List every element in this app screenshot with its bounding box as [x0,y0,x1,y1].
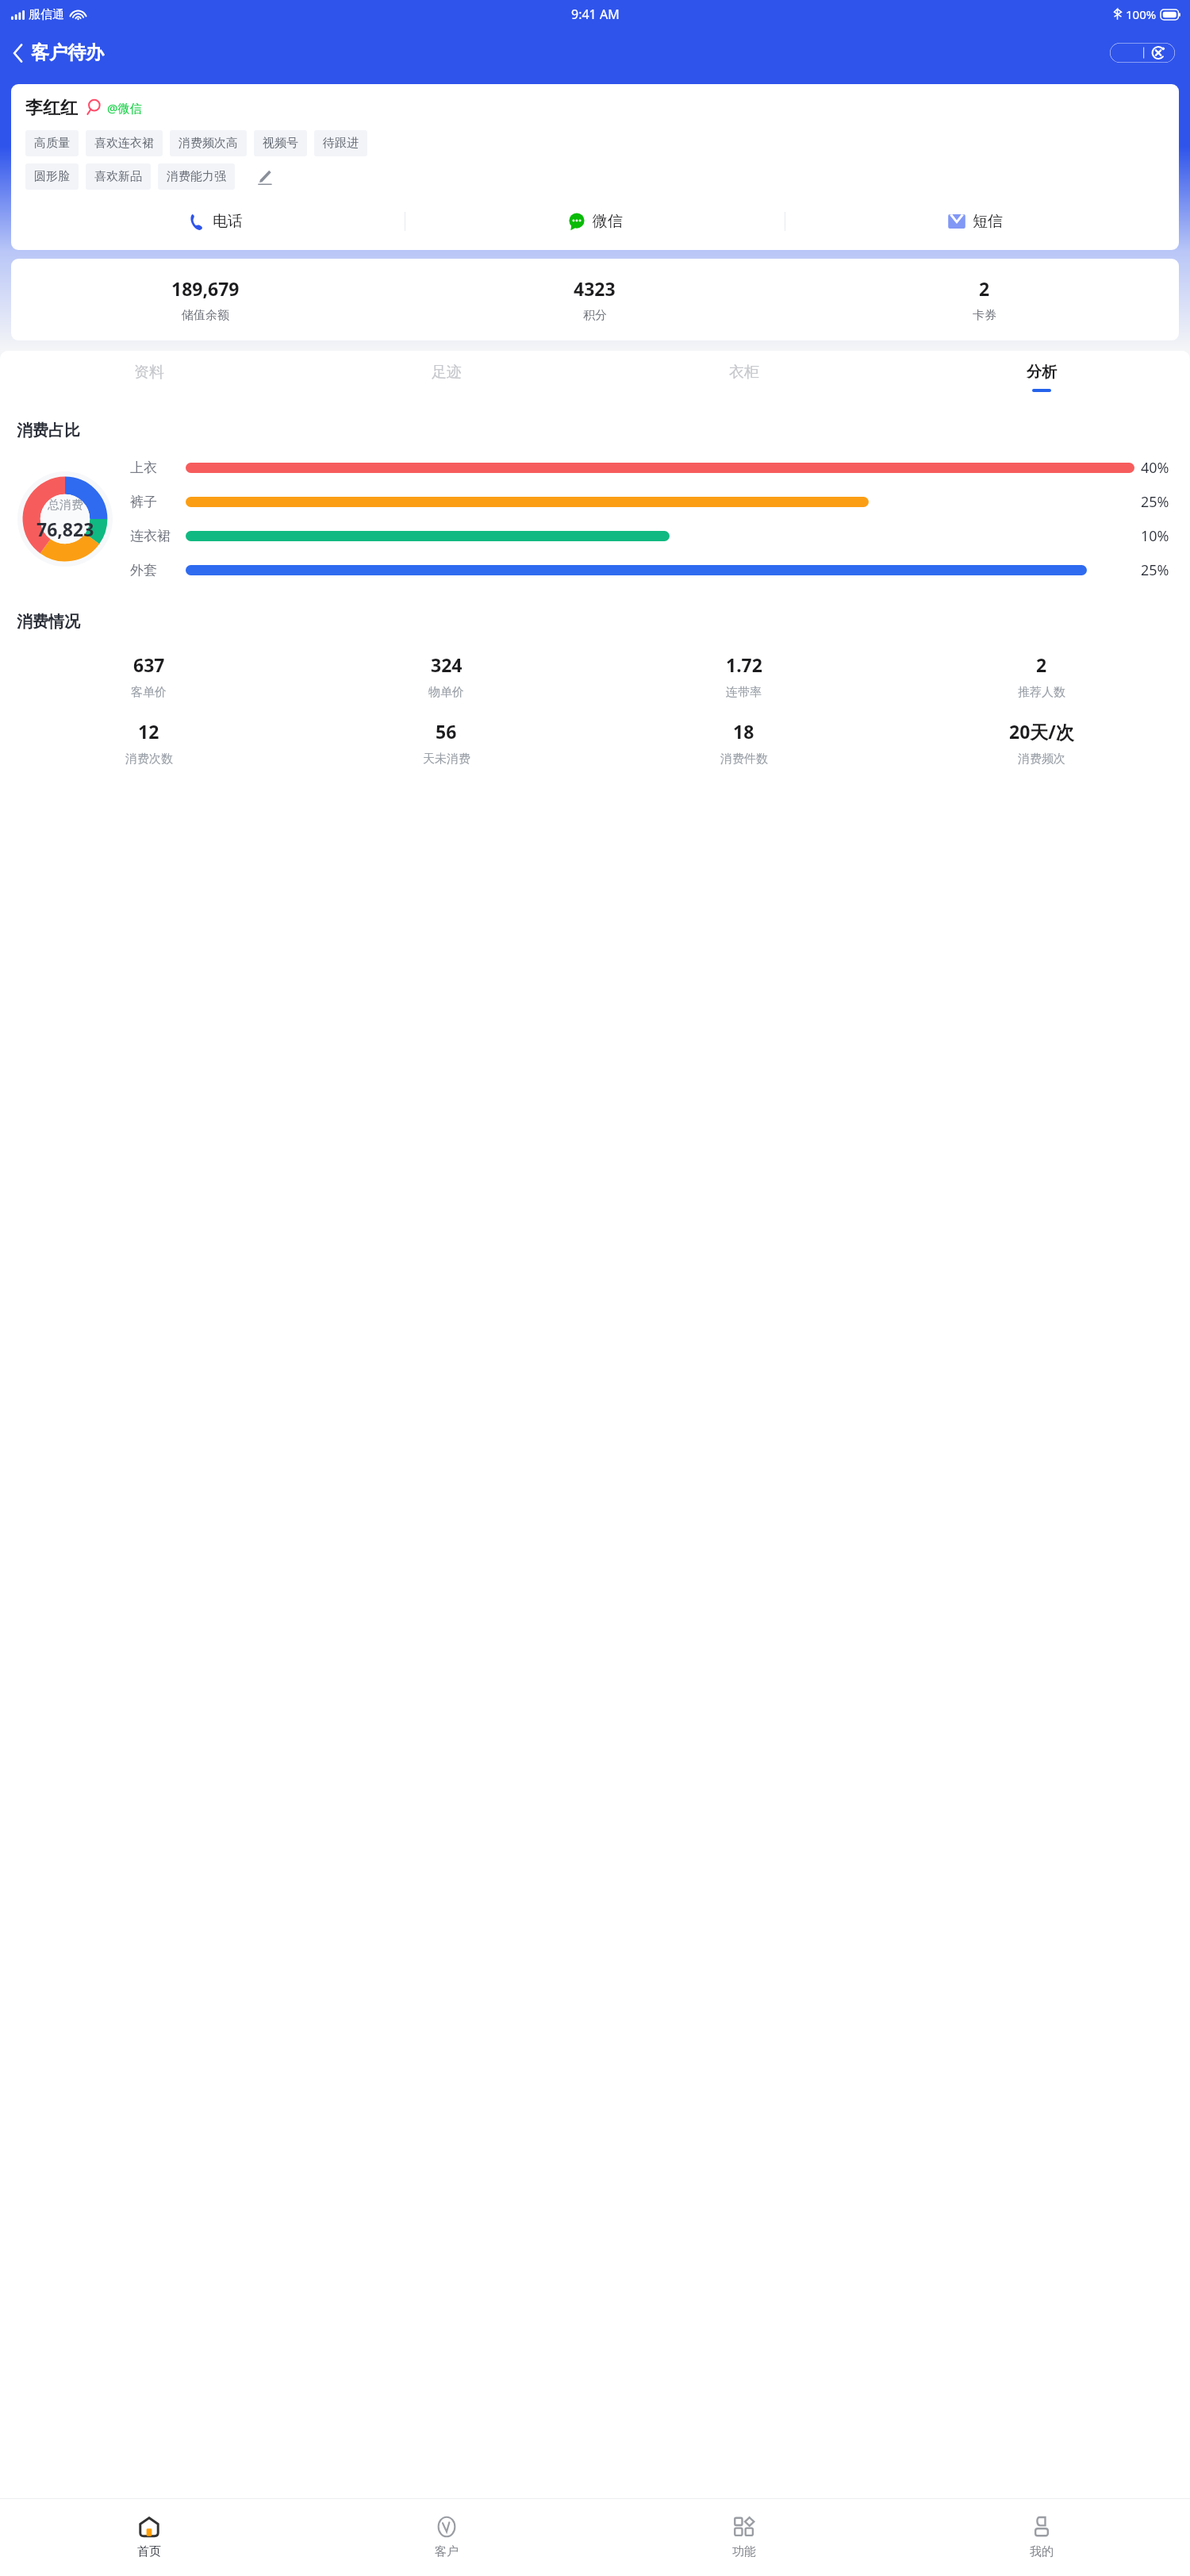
staticText: 637 [133,652,165,677]
button[interactable]: 客户待办 [10,37,107,69]
button[interactable]: 裤子 [130,492,1177,512]
staticText: 待跟进 [323,136,359,151]
button[interactable]: 1.72 [595,652,892,700]
button[interactable]: 待跟进 [314,130,367,156]
staticText: 76,823 [36,517,94,541]
button[interactable]: 资料 [0,351,297,403]
button[interactable]: 12 [0,719,297,767]
staticText: 足迹 [432,363,462,382]
staticText: 微信 [593,212,623,231]
staticText: 100% [1126,6,1157,22]
button[interactable]: 首页 [0,2499,297,2576]
staticText: 功能 [732,2544,756,2559]
button[interactable]: 连衣裙 [130,526,1177,546]
button[interactable]: 喜欢新品 [86,163,151,190]
staticText: 25% [1141,560,1169,580]
staticText: 189,679 [171,276,240,301]
staticText: 20天/次 [1009,719,1074,744]
button[interactable]: 衣柜 [595,351,892,403]
button[interactable]: 客户 [297,2499,595,2576]
staticText: 视频号 [263,136,298,151]
staticText: 高质量 [34,136,70,151]
button[interactable]: 4323 [400,276,789,323]
staticText: 客单价 [131,685,167,700]
staticText: 圆形脸 [34,169,70,184]
staticText: 积分 [583,308,607,323]
staticText: 短信 [973,212,1003,231]
staticText: 喜欢新品 [94,169,142,184]
staticText: 总消费 [48,498,83,513]
button[interactable]: 消费能力强 [158,163,235,190]
button[interactable]: 外套 [130,560,1177,580]
staticText: 消费能力强 [167,169,226,184]
button[interactable]: 微信 [405,201,785,242]
staticText: 25% [1141,492,1169,512]
staticText: 2 [1036,652,1047,677]
staticText: 我的 [1030,2544,1054,2559]
staticText: 消费次数 [125,752,173,767]
button[interactable]: 2 [789,276,1179,323]
staticText: 消费频次高 [178,136,238,151]
staticText: 连衣裙 [130,528,171,544]
staticText: 卡券 [973,308,996,323]
staticText: 18 [733,719,754,744]
staticText: 资料 [134,363,164,382]
staticText: 消费占比 [17,421,80,440]
button[interactable] [1110,43,1175,63]
staticText: 服信通 [29,7,64,22]
staticText: 客户待办 [31,41,104,64]
staticText: @微信 [107,100,142,116]
button[interactable]: 电话 [25,201,405,242]
staticText: 10% [1141,526,1169,546]
button[interactable]: 圆形脸 [25,163,79,190]
button[interactable]: 324 [297,652,595,700]
button[interactable]: 视频号 [254,130,307,156]
staticText: 客户 [435,2544,459,2559]
staticText: 1.72 [726,652,762,677]
staticText: 储值余额 [182,308,229,323]
staticText: 12 [138,719,159,744]
button[interactable]: 56 [297,719,595,767]
button[interactable]: 消费频次高 [170,130,247,156]
staticText: 2 [979,276,990,301]
staticText: 首页 [137,2544,161,2559]
button[interactable]: 189,679 [11,276,400,323]
button[interactable]: 2 [892,652,1190,700]
staticText: 李红红 [25,97,78,119]
staticText: 衣柜 [729,363,759,382]
staticText: 4323 [574,276,616,301]
staticText: 消费情况 [17,612,80,632]
staticText: 9:41 AM [571,6,620,23]
button[interactable]: 短信 [785,201,1165,242]
staticText: 324 [431,652,463,677]
staticText: 连带率 [726,685,762,700]
staticText: 外套 [130,562,157,579]
button[interactable]: 高质量 [25,130,79,156]
button[interactable]: 编辑标签 [252,165,276,189]
button[interactable]: 足迹 [297,351,595,403]
staticText: 喜欢连衣裙 [94,136,154,151]
staticText: 裤子 [130,494,157,510]
button[interactable]: 637 [0,652,297,700]
button[interactable]: 我的 [892,2499,1190,2576]
staticText: 分析 [1027,363,1057,382]
staticText: 40% [1141,458,1169,478]
button[interactable]: 分析 [892,351,1190,403]
staticText: 上衣 [130,459,157,476]
button[interactable]: 喜欢连衣裙 [86,130,163,156]
button[interactable]: 功能 [595,2499,892,2576]
staticText: 天未消费 [423,752,470,767]
staticText: 56 [436,719,457,744]
staticText: 物单价 [428,685,464,700]
button[interactable]: 18 [595,719,892,767]
staticText: 推荐人数 [1018,685,1065,700]
staticText: 消费频次 [1018,752,1065,767]
button[interactable]: 20天/次 [892,719,1190,767]
staticText: 电话 [213,212,243,231]
staticText: 消费件数 [720,752,768,767]
button[interactable]: 上衣 [130,458,1177,478]
